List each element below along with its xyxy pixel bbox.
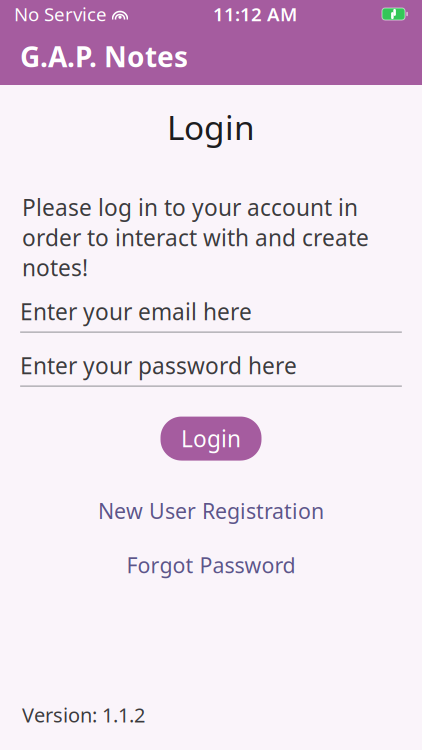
staticText: Enter your email here (20, 296, 252, 327)
button[interactable]: Forgot Password (114, 545, 307, 585)
staticText: Enter your password here (20, 350, 297, 381)
staticText: New User Registration (98, 497, 324, 525)
staticText: Login (167, 105, 255, 149)
staticText: Please log in to your account in order t… (22, 192, 369, 283)
button[interactable]: Login (160, 417, 261, 461)
staticText: Login (181, 423, 241, 454)
staticText: 11:12 AM (213, 2, 297, 26)
staticText: Forgot Password (126, 551, 295, 579)
staticText: G.A.P. Notes (20, 38, 188, 75)
staticText: No Service (14, 2, 107, 26)
button[interactable]: New User Registration (86, 491, 336, 531)
staticText: Version: 1.1.2 (22, 701, 145, 728)
